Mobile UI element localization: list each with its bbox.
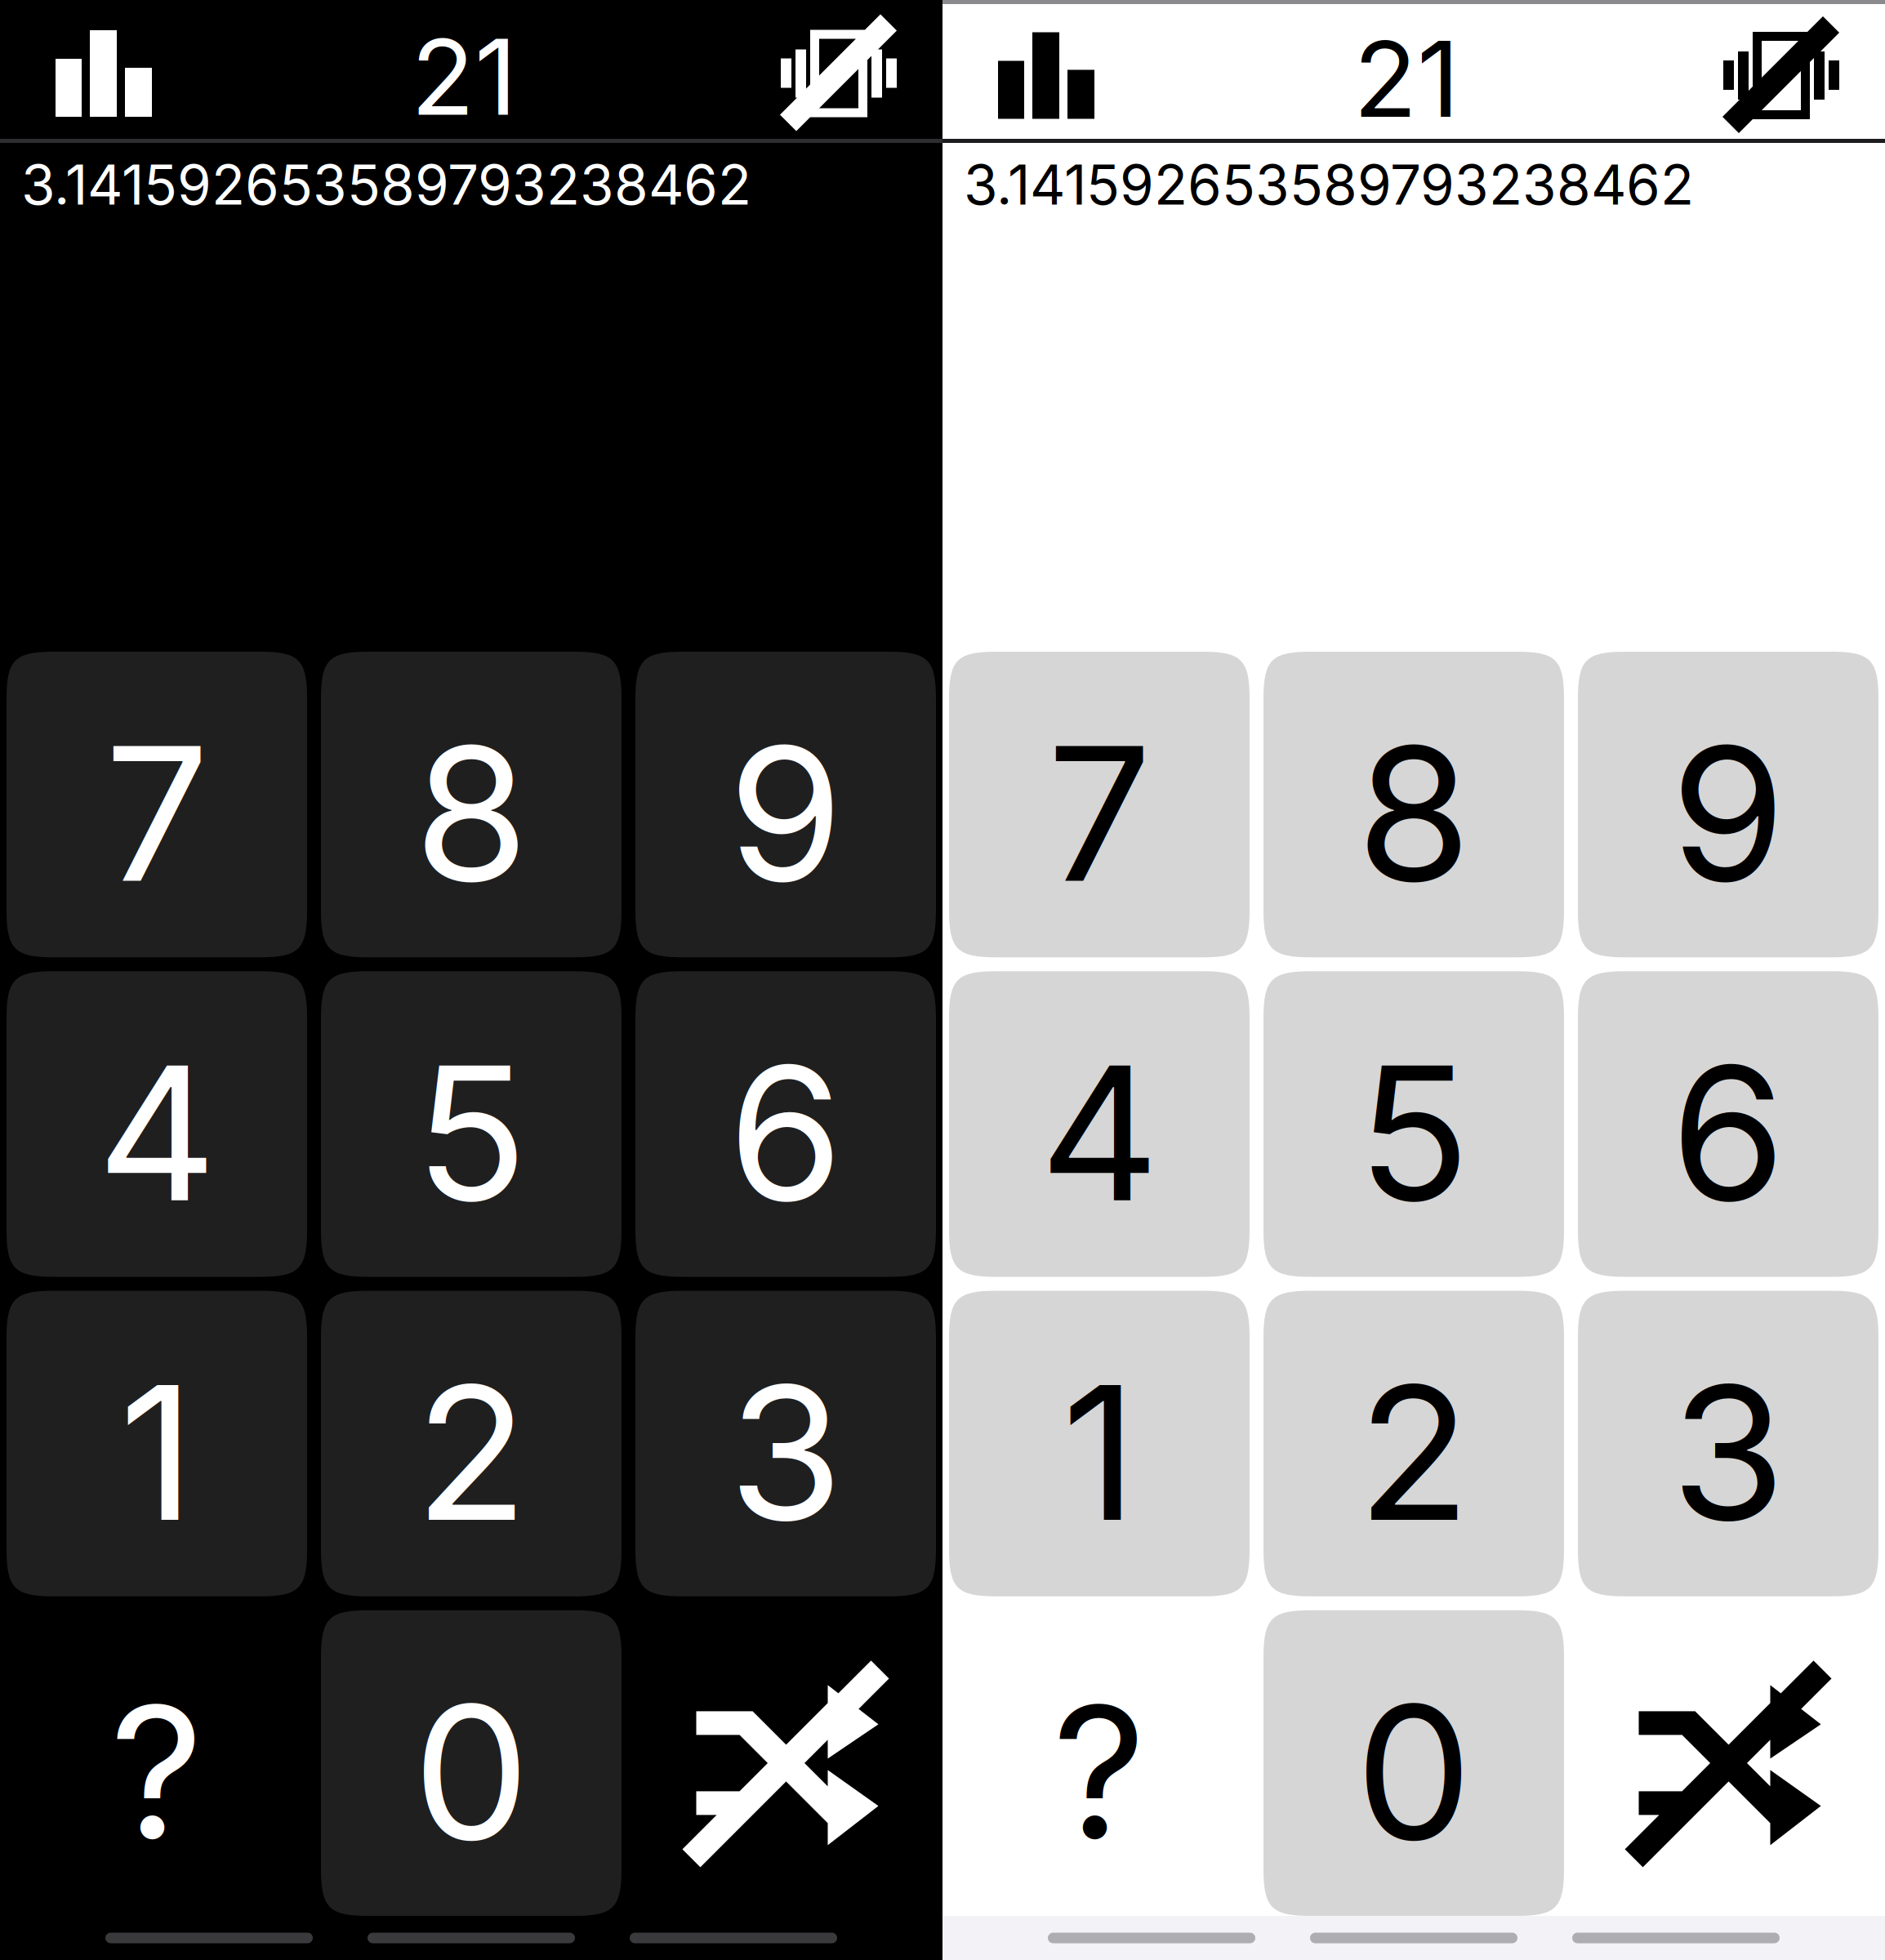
staticText: ? [110, 1661, 204, 1883]
button[interactable]: Haptics off [1678, 2, 1885, 141]
button[interactable]: Shuffle off [635, 1610, 936, 1916]
button[interactable]: 3 [635, 1291, 936, 1596]
staticText: 6 [1671, 1021, 1786, 1245]
button[interactable]: 0 [321, 1610, 622, 1916]
button[interactable]: 4 [949, 971, 1250, 1277]
staticText: 21 [411, 14, 517, 140]
staticText: 7 [1047, 702, 1152, 926]
button[interactable]: Statistics [0, 0, 207, 139]
button[interactable]: Shuffle off [1578, 1610, 1878, 1916]
staticText: 1 [119, 1341, 194, 1565]
button[interactable]: 1 [949, 1291, 1250, 1596]
staticText: 4 [1040, 1021, 1159, 1245]
button[interactable]: 7 [949, 652, 1250, 957]
button[interactable]: Hint [7, 1610, 307, 1916]
staticText: 5 [1357, 1021, 1470, 1245]
button[interactable]: 6 [1578, 971, 1878, 1277]
button[interactable]: 9 [635, 652, 936, 957]
button[interactable]: 2 [1263, 1291, 1564, 1596]
staticText: 0 [413, 1660, 530, 1884]
staticText: ? [1052, 1661, 1146, 1883]
button[interactable]: 9 [1578, 652, 1878, 957]
staticText: 1 [1062, 1341, 1137, 1565]
button[interactable]: 0 [1263, 1610, 1564, 1916]
staticText: 3.141592653589793238462 [964, 151, 1694, 218]
staticText: 9 [728, 702, 843, 926]
button[interactable]: 3 [1578, 1291, 1878, 1596]
staticText: 3 [729, 1341, 843, 1565]
staticText: 0 [1355, 1660, 1472, 1884]
staticText: 2 [1357, 1341, 1470, 1565]
button[interactable]: 4 [7, 971, 307, 1277]
button[interactable]: Statistics [942, 2, 1150, 141]
staticText: 5 [415, 1021, 528, 1245]
staticText: 7 [105, 702, 209, 926]
staticText: 3 [1671, 1341, 1785, 1565]
button[interactable]: Hint [949, 1610, 1250, 1916]
button[interactable]: 5 [321, 971, 622, 1277]
staticText: 21 [1353, 16, 1459, 142]
staticText: 8 [1357, 702, 1471, 926]
button[interactable]: 1 [7, 1291, 307, 1596]
button[interactable]: 8 [1263, 652, 1564, 957]
staticText: 9 [1671, 702, 1786, 926]
button[interactable]: 5 [1263, 971, 1564, 1277]
button[interactable]: Haptics off [735, 0, 942, 139]
staticText: 4 [97, 1021, 216, 1245]
staticText: 3.141592653589793238462 [21, 151, 751, 218]
staticText: 6 [728, 1021, 843, 1245]
button[interactable]: 6 [635, 971, 936, 1277]
button[interactable]: 2 [321, 1291, 622, 1596]
staticText: 2 [415, 1341, 528, 1565]
button[interactable]: 7 [7, 652, 307, 957]
button[interactable]: 8 [321, 652, 622, 957]
staticText: 8 [414, 702, 528, 926]
